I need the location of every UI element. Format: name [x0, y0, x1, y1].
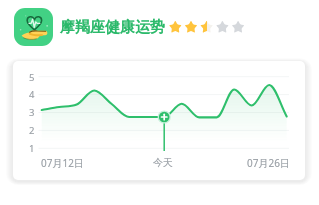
staticText: 2 — [29, 124, 35, 137]
button[interactable]: 健康运势 — [14, 8, 53, 46]
staticText: 3 — [29, 106, 35, 119]
staticText: 4 — [29, 88, 35, 101]
staticText: 5 — [29, 71, 35, 84]
staticText: 摩羯座健康运势 — [60, 18, 165, 37]
staticText: 07月26日 — [247, 156, 290, 170]
staticText: 07月12日 — [41, 156, 84, 170]
staticText: 今天 — [153, 156, 173, 169]
staticText: 1 — [29, 142, 35, 155]
